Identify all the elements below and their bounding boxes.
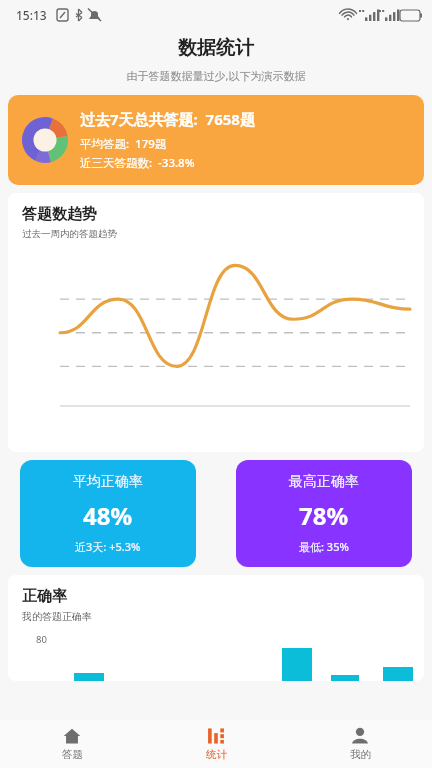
staticText: 78% <box>299 499 349 532</box>
staticText: 我的 <box>350 748 371 761</box>
staticText: 答题 <box>62 748 83 761</box>
staticText: 48% <box>83 499 133 532</box>
staticText: 平均答题: 179题 <box>80 136 167 152</box>
staticText: 近3天: +5.3% <box>75 539 141 554</box>
button[interactable]: 平均正确率 <box>20 460 196 567</box>
button[interactable]: 答题 <box>0 720 144 768</box>
staticText: 统计 <box>206 748 227 761</box>
staticText: 平均正确率 <box>73 473 143 491</box>
staticText: 近三天答题数: -33.8% <box>80 155 195 171</box>
button[interactable]: 正确率 <box>8 575 424 681</box>
staticText: 过去7天总共答题: 7658题 <box>80 109 255 129</box>
staticText: 过去一周内的答题趋势 <box>22 228 117 240</box>
staticText: 最低: 35% <box>299 539 349 554</box>
button[interactable]: 最高正确率 <box>236 460 412 567</box>
button[interactable]: 答题数趋势 <box>8 193 424 452</box>
button[interactable]: 过去7天总共答题: 7658题 <box>8 95 424 185</box>
staticText: 由于答题数据量过少,以下为演示数据 <box>0 68 432 83</box>
staticText: 最高正确率 <box>289 473 359 491</box>
staticText: 我的答题正确率 <box>22 610 92 623</box>
staticText: 数据统计 <box>0 36 432 60</box>
staticText: 答题数趋势 <box>22 205 97 224</box>
staticText: 正确率 <box>22 587 67 606</box>
staticText: 80 <box>36 633 47 646</box>
button[interactable]: 统计 <box>144 720 288 768</box>
staticText: 15:13 <box>16 7 47 23</box>
button[interactable]: 我的 <box>288 720 432 768</box>
